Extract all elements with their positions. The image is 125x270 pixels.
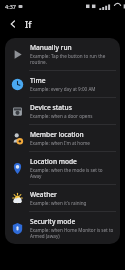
button[interactable]: Time: [5, 71, 120, 97]
button[interactable]: Back: [4, 15, 22, 33]
button[interactable]: Security mode: [5, 212, 120, 244]
staticText: Weather: [30, 190, 57, 199]
staticText: 4:37: [5, 3, 16, 10]
staticText: Example: every day at 9:00 AM: [30, 86, 96, 92]
staticText: Example: when the mode is set to Away: [30, 167, 115, 179]
staticText: Manually run: [30, 43, 72, 52]
staticText: Example: when I'm at home: [30, 140, 90, 146]
staticText: Example: Tap the button to run the routi…: [30, 53, 115, 65]
button[interactable]: Location mode: [5, 152, 120, 184]
staticText: Example: when Home Monitor is set to Arm…: [30, 227, 115, 239]
staticText: Example: when it's raining: [30, 200, 87, 206]
staticText: Security mode: [30, 217, 76, 226]
button[interactable]: Member location: [5, 125, 120, 151]
staticText: Device status: [30, 103, 72, 112]
staticText: Time: [30, 76, 46, 85]
staticText: Example: when a door opens: [30, 113, 93, 119]
staticText: Member location: [30, 130, 84, 139]
staticText: Location mode: [30, 157, 77, 166]
button[interactable]: Device status: [5, 98, 120, 124]
button[interactable]: Weather: [5, 185, 120, 211]
button[interactable]: Manually run: [5, 38, 120, 70]
staticText: If: [25, 18, 32, 30]
